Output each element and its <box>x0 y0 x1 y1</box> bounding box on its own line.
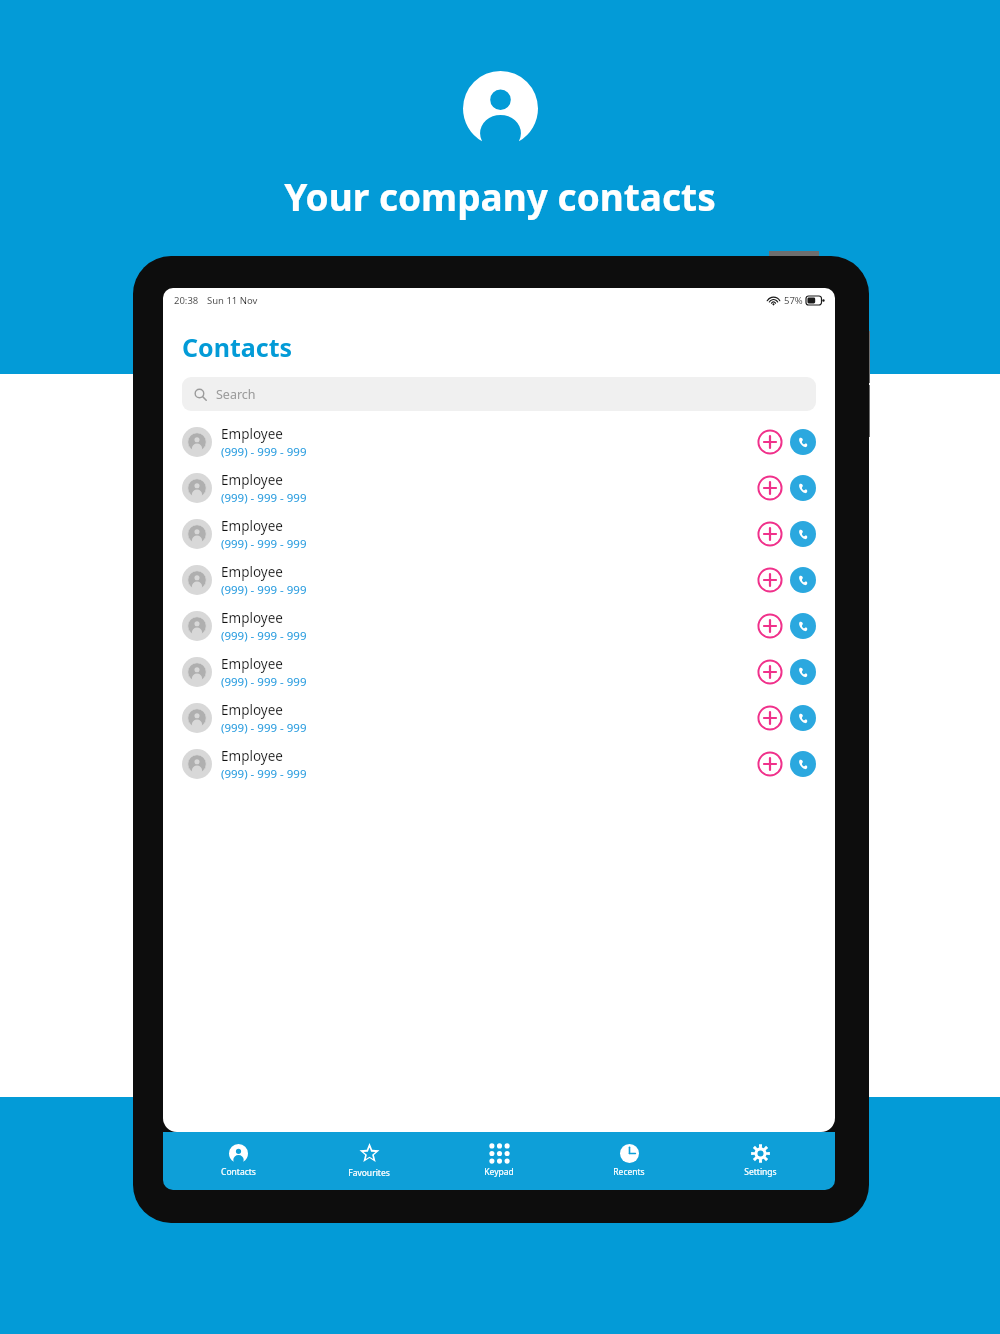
staticText: 20:38 <box>174 294 199 307</box>
staticText: Contacts <box>182 330 293 364</box>
staticText: (999) - 999 - 999 <box>221 536 307 552</box>
button[interactable]: Settings <box>705 1132 815 1190</box>
staticText: Your company contacts <box>284 171 716 221</box>
staticText: (999) - 999 - 999 <box>221 444 307 460</box>
button[interactable]: Employee <box>163 557 835 603</box>
button[interactable]: Add contact <box>757 521 783 547</box>
button[interactable]: Call <box>790 613 816 639</box>
button[interactable]: Add contact <box>757 613 783 639</box>
staticText: Settings <box>744 1166 777 1178</box>
button[interactable]: Add contact <box>757 475 783 501</box>
button[interactable]: Employee <box>163 603 835 649</box>
button[interactable]: Call <box>790 751 816 777</box>
button[interactable]: Add contact <box>757 705 783 731</box>
staticText: Employee <box>221 471 283 489</box>
button[interactable]: Employee <box>163 649 835 695</box>
staticText: Employee <box>221 517 283 535</box>
button[interactable]: Employee <box>163 741 835 787</box>
button[interactable]: Call <box>790 705 816 731</box>
staticText: Employee <box>221 655 283 673</box>
staticText: (999) - 999 - 999 <box>221 628 307 644</box>
button[interactable]: Add contact <box>757 659 783 685</box>
button[interactable]: Search <box>182 377 816 411</box>
button[interactable]: Recents <box>574 1132 684 1190</box>
button[interactable]: Call <box>790 567 816 593</box>
button[interactable]: Add contact <box>757 751 783 777</box>
staticText: Favourites <box>348 1167 390 1179</box>
staticText: Search <box>216 386 256 403</box>
button[interactable]: Favourites <box>314 1132 424 1190</box>
staticText: (999) - 999 - 999 <box>221 766 307 782</box>
staticText: Sun 11 Nov <box>207 294 258 307</box>
button[interactable]: Employee <box>163 419 835 465</box>
staticText: Keypad <box>484 1166 514 1178</box>
button[interactable]: Call <box>790 429 816 455</box>
button[interactable]: Call <box>790 475 816 501</box>
staticText: (999) - 999 - 999 <box>221 674 307 690</box>
button[interactable]: Employee <box>163 511 835 557</box>
staticText: 57% <box>784 294 803 307</box>
button[interactable]: Contacts <box>183 1132 293 1190</box>
button[interactable]: Employee <box>163 465 835 511</box>
staticText: (999) - 999 - 999 <box>221 582 307 598</box>
staticText: Recents <box>613 1166 645 1178</box>
button[interactable]: Employee <box>163 695 835 741</box>
button[interactable]: Call <box>790 659 816 685</box>
button[interactable]: Keypad <box>444 1132 554 1190</box>
staticText: Contacts <box>221 1166 256 1178</box>
staticText: Employee <box>221 425 283 443</box>
staticText: (999) - 999 - 999 <box>221 490 307 506</box>
staticText: Employee <box>221 609 283 627</box>
staticText: (999) - 999 - 999 <box>221 720 307 736</box>
button[interactable]: Call <box>790 521 816 547</box>
staticText: Employee <box>221 701 283 719</box>
button[interactable]: Add contact <box>757 567 783 593</box>
staticText: Employee <box>221 747 283 765</box>
button[interactable]: Add contact <box>757 429 783 455</box>
staticText: Employee <box>221 563 283 581</box>
